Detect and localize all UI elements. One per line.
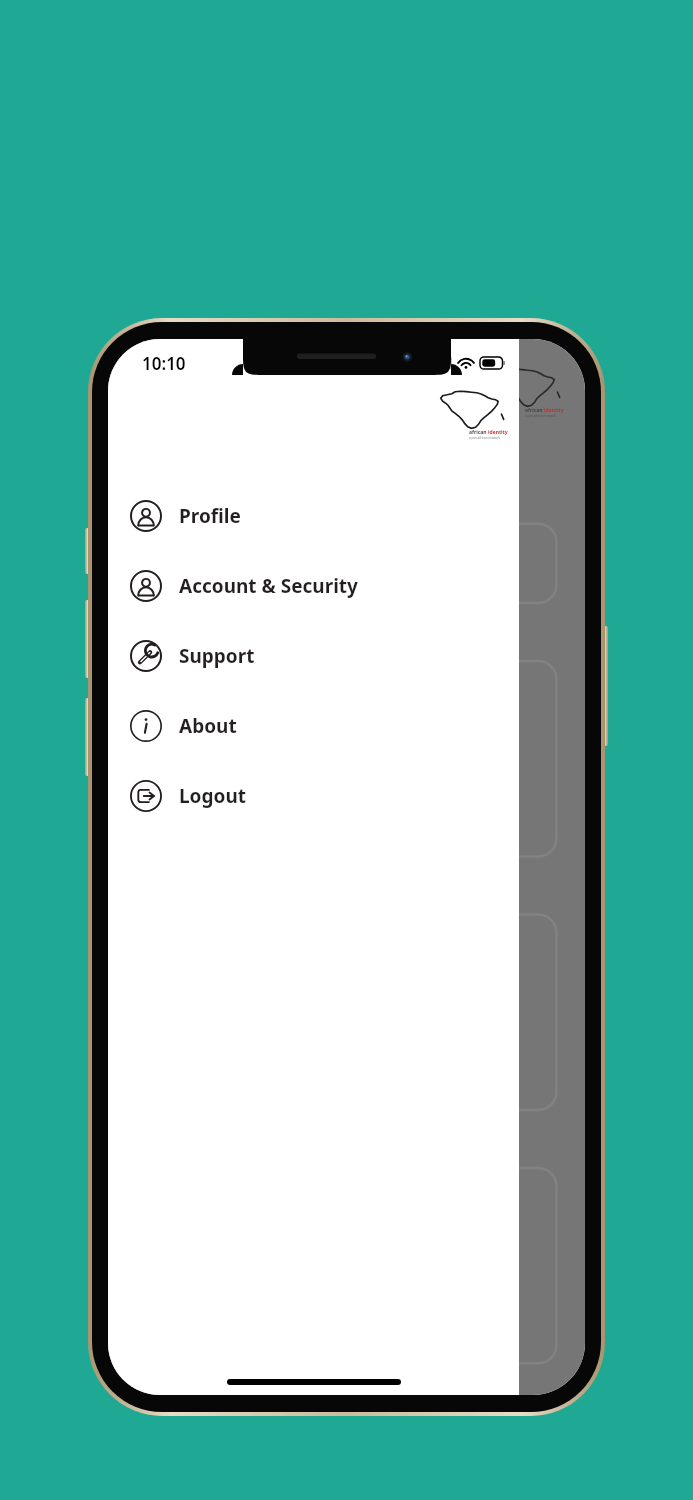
staticText: Profile xyxy=(179,503,241,529)
button[interactable]: Support xyxy=(108,621,519,691)
staticText: african xyxy=(525,407,544,414)
staticText: Logout xyxy=(179,783,246,809)
staticText: a pan-african network xyxy=(525,414,556,418)
other: African Identity xyxy=(433,389,507,441)
button[interactable]: Logout xyxy=(108,761,519,831)
button[interactable]: Account xyxy=(108,551,519,621)
other: About xyxy=(130,710,162,742)
other: Account xyxy=(130,570,162,602)
button[interactable]: Account xyxy=(108,481,519,551)
other: Support xyxy=(130,640,162,672)
other: African Identity xyxy=(489,367,563,419)
staticText: Support xyxy=(179,643,255,669)
staticText: a pan-african network xyxy=(469,436,500,440)
other: Logout xyxy=(130,780,162,812)
staticText: 10:10 xyxy=(142,352,186,375)
staticText: identity xyxy=(544,407,564,414)
staticText: About xyxy=(179,713,237,739)
button[interactable]: About xyxy=(108,691,519,761)
other: Account xyxy=(130,500,162,532)
staticText: identity xyxy=(488,429,508,436)
staticText: african xyxy=(469,429,488,436)
staticText: Account & Security xyxy=(179,573,358,599)
